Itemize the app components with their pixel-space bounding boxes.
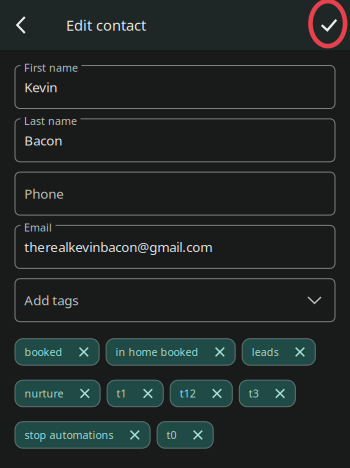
staticText: Edit contact (66, 15, 146, 35)
button[interactable]: nurture (15, 380, 100, 407)
button[interactable]: stop automations (15, 422, 150, 448)
staticText: Email (24, 220, 52, 235)
staticText: therealkevinbacon@gmail.com (24, 238, 212, 256)
button[interactable]: in home booked (106, 339, 235, 365)
button[interactable]: t3 (239, 380, 295, 407)
staticText: Add tags (24, 291, 78, 309)
button[interactable]: t0 (157, 422, 213, 448)
staticText: stop automations (24, 428, 113, 442)
button[interactable]: Back (0, 0, 37, 50)
staticText: Bacon (24, 131, 62, 149)
button[interactable]: Save (308, 0, 350, 50)
staticText: leads (252, 345, 279, 359)
button[interactable]: t12 (170, 380, 232, 407)
staticText: in home booked (116, 345, 199, 359)
staticText: Last name (24, 114, 77, 128)
staticText: First name (24, 60, 78, 75)
staticText: t0 (167, 428, 177, 442)
staticText: booked (24, 345, 62, 359)
staticText: t1 (117, 386, 127, 401)
button[interactable]: Add tags (15, 279, 335, 322)
staticText: t3 (249, 386, 259, 401)
button[interactable]: t1 (107, 380, 163, 407)
staticText: Kevin (24, 78, 57, 96)
staticText: Phone (24, 185, 64, 202)
button[interactable]: Bacon (15, 119, 335, 162)
button[interactable]: leads (242, 339, 315, 365)
staticText: t12 (180, 386, 196, 401)
button[interactable]: therealkevinbacon@gmail.com (15, 225, 335, 268)
staticText: nurture (24, 386, 63, 401)
button[interactable]: booked (15, 339, 99, 365)
button[interactable]: Phone (15, 172, 335, 215)
button[interactable]: Kevin (15, 65, 335, 108)
